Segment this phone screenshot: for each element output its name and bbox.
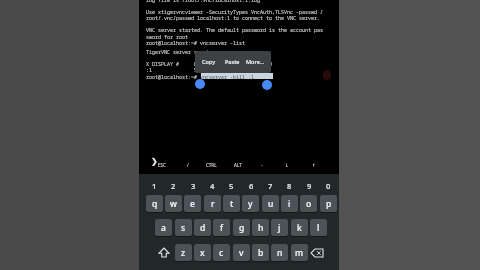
button[interactable]: f [213, 219, 230, 236]
staticText: 3 [191, 181, 196, 191]
staticText: CTRL [206, 162, 217, 168]
button[interactable]: b [252, 244, 269, 261]
staticText: VNC server started. The default password… [146, 27, 324, 34]
staticText: a [161, 222, 166, 234]
button[interactable]: ALT [228, 160, 248, 170]
button[interactable]: 4 [204, 179, 220, 192]
button[interactable]: CTRL [201, 160, 221, 170]
button[interactable]: e [184, 195, 201, 212]
staticText: root@localhost:~# vncserver -list [146, 40, 246, 47]
button[interactable]: Copy [202, 58, 216, 65]
button[interactable]: c [213, 244, 230, 261]
staticText: j [278, 222, 281, 234]
staticText: n [277, 247, 283, 259]
staticText: q [152, 198, 158, 210]
button[interactable]: 8 [281, 179, 297, 192]
button[interactable]: m [291, 244, 308, 261]
staticText: s [181, 222, 186, 234]
staticText: 1 [152, 181, 157, 191]
staticText: 8 [287, 181, 292, 191]
staticText: l [317, 222, 320, 234]
staticText: i [288, 198, 291, 210]
button[interactable]: - [252, 160, 272, 170]
staticText: k [297, 222, 302, 234]
staticText: e [190, 198, 195, 210]
staticText: w [170, 198, 177, 210]
button[interactable]: y [242, 195, 259, 212]
button[interactable]: q [146, 195, 163, 212]
button[interactable]: j [271, 219, 288, 236]
staticText: ALT [234, 162, 242, 168]
button[interactable] [141, 244, 167, 261]
staticText: root/.vnc/passwd localhost:1 to connect … [146, 15, 321, 22]
button[interactable]: d [194, 219, 211, 236]
staticText: m [295, 247, 304, 259]
button[interactable]: 5 [223, 179, 239, 192]
button[interactable]: k [291, 219, 308, 236]
staticText: - [261, 162, 263, 168]
staticText: v [239, 247, 244, 259]
button[interactable]: / [178, 160, 198, 170]
staticText: b [258, 247, 264, 259]
button[interactable]: v [233, 244, 250, 261]
button[interactable]: 1 [146, 179, 162, 192]
staticText: d [200, 222, 206, 234]
staticText: z [181, 247, 186, 259]
button[interactable]: ↓ [277, 160, 297, 170]
button[interactable]: t [223, 195, 240, 212]
button[interactable]: ESC [152, 160, 172, 170]
staticText: h [258, 222, 264, 234]
staticText: / [187, 162, 189, 168]
staticText: x [200, 247, 205, 259]
staticText: r [211, 198, 215, 210]
staticText: 9 [307, 181, 312, 191]
staticText: t [230, 198, 234, 210]
button[interactable]: ↑ [304, 160, 324, 170]
button[interactable]: a [155, 219, 172, 236]
staticText: 5 [229, 181, 234, 191]
button[interactable]: u [262, 195, 279, 212]
button[interactable]: 9 [301, 179, 317, 192]
button[interactable]: 0 [320, 179, 336, 192]
staticText: u [268, 198, 274, 210]
button[interactable]: n [271, 244, 288, 261]
staticText: 0 [326, 181, 331, 191]
button[interactable]: 7 [262, 179, 278, 192]
staticText: c [219, 247, 224, 259]
button[interactable]: 6 [243, 179, 259, 192]
staticText: 4 [210, 181, 215, 191]
button[interactable]: o [300, 195, 317, 212]
staticText: ↑ [312, 163, 316, 168]
staticText: :1 5901 2502 [146, 67, 255, 74]
staticText: Use xtigervncviewer -SecurityTypes VncAu… [146, 9, 324, 16]
staticText: ↓ [285, 163, 289, 168]
staticText: y [248, 198, 253, 210]
button[interactable]: p [320, 195, 337, 212]
staticText: p [326, 198, 332, 210]
button[interactable]: r [204, 195, 221, 212]
button[interactable]: 3 [185, 179, 201, 192]
button[interactable]: 2 [165, 179, 181, 192]
staticText: X DISPLAY # RFB PORT # PROCESS ID [146, 61, 273, 68]
button[interactable]: g [233, 219, 250, 236]
staticText: root@localhost:~# vncserver -kill :1 [146, 74, 255, 81]
staticText: 2 [171, 181, 176, 191]
button[interactable]: h [252, 219, 269, 236]
button[interactable]: More... [246, 58, 265, 65]
button[interactable]: w [165, 195, 182, 212]
button[interactable] [303, 244, 337, 261]
staticText: sword for root [146, 34, 189, 41]
staticText: log file is /root/.vnc/localhost:1.log [146, 0, 261, 4]
button[interactable]: x [194, 244, 211, 261]
staticText: TigerVNC server sessions: [146, 49, 222, 56]
staticText: f [220, 222, 224, 234]
staticText: g [239, 222, 245, 234]
button[interactable]: l [310, 219, 327, 236]
button[interactable]: z [175, 244, 192, 261]
button[interactable]: i [281, 195, 298, 212]
staticText: ESC [158, 162, 166, 168]
button[interactable]: ❯ [151, 157, 158, 166]
button[interactable]: s [175, 219, 192, 236]
button[interactable]: Paste [225, 58, 240, 65]
staticText: 7 [268, 181, 273, 191]
